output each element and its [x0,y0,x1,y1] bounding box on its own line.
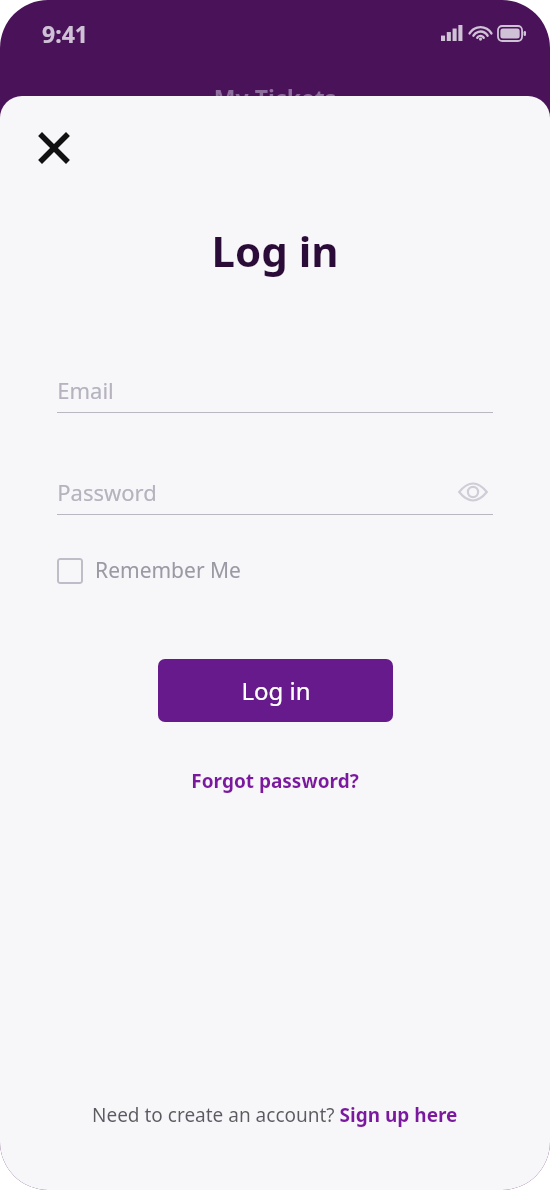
staticText: My Tickets [0,82,550,113]
staticText: Remember Me [95,556,241,585]
button[interactable]: Forgot password? [181,762,369,800]
button[interactable]: Close [30,124,78,172]
button[interactable]: Show password [453,472,493,512]
staticText: Password [57,477,157,507]
staticText: Need to create an account? Sign up here [92,1102,458,1128]
staticText: Log in [0,222,550,279]
button[interactable]: Need to create an account? Sign up here [82,1096,468,1134]
staticText: Forgot password? [191,768,359,794]
staticText: Email [57,375,114,405]
button[interactable]: Email [57,368,493,413]
button[interactable]: Password [57,470,493,515]
staticText: Log in [241,674,311,707]
staticText: 9:41 [42,18,88,49]
button[interactable]: Log in [158,659,393,722]
button[interactable]: Remember Me [57,556,249,585]
